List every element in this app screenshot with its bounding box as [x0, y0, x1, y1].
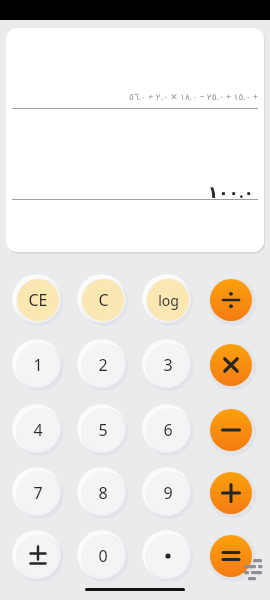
staticText: 3	[163, 354, 173, 376]
staticText: 8	[98, 482, 108, 504]
button[interactable]: CE	[17, 279, 59, 321]
staticText: C	[98, 289, 109, 311]
button[interactable]: log	[147, 279, 189, 321]
button[interactable]: 5	[82, 409, 124, 451]
button[interactable]: 9	[147, 472, 189, 514]
staticText: 0	[98, 545, 108, 567]
button[interactable]: Divide	[210, 279, 252, 321]
button[interactable]: Subtract	[210, 409, 252, 451]
button[interactable]: Decimal point	[147, 535, 189, 577]
staticText: ١٥.٠ + ٢٥.٠ − ١٨.٠ ✕ ٢.٠ + ٥٦.٠ +	[129, 90, 258, 102]
staticText: 9	[163, 482, 173, 504]
staticText: 6	[163, 419, 173, 441]
button[interactable]: 2	[82, 344, 124, 386]
button[interactable]: 3	[147, 344, 189, 386]
staticText: 2	[98, 354, 108, 376]
staticText: 5	[98, 419, 108, 441]
button[interactable]: C	[82, 279, 124, 321]
button[interactable]: Plus minus	[17, 535, 59, 577]
button[interactable]: 4	[17, 409, 59, 451]
staticText: ١٠٠.٠	[207, 180, 254, 203]
staticText: log	[158, 291, 179, 310]
staticText: 1	[33, 354, 43, 376]
button[interactable]: Equals	[210, 535, 252, 577]
staticText: 4	[33, 419, 43, 441]
button[interactable]: 1	[17, 344, 59, 386]
button[interactable]: Multiply	[210, 344, 252, 386]
button[interactable]: 6	[147, 409, 189, 451]
button[interactable]: 0	[82, 535, 124, 577]
staticText: CE	[28, 289, 48, 311]
button[interactable]: Add	[210, 472, 252, 514]
button[interactable]: 7	[17, 472, 59, 514]
button[interactable]: 8	[82, 472, 124, 514]
staticText: 7	[33, 482, 43, 504]
